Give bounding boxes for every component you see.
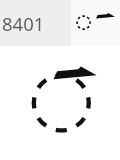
staticText: 8401 [2, 11, 45, 36]
button[interactable]: Sync status [72, 11, 95, 34]
button[interactable]: Forward [94, 5, 118, 29]
